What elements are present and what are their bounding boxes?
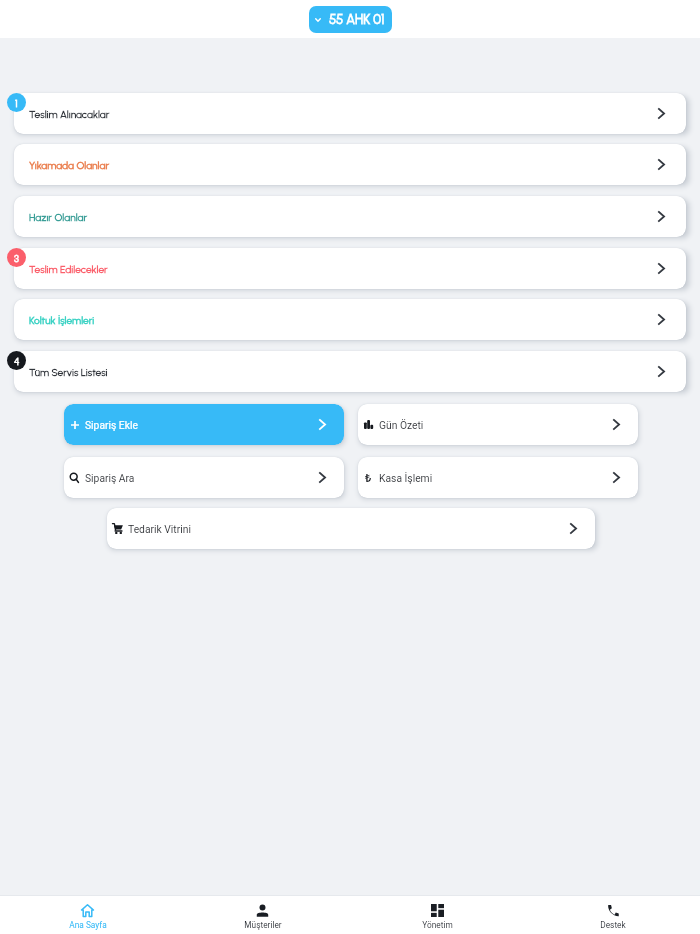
staticText: Destek: [600, 920, 626, 930]
staticText: 4: [14, 355, 20, 367]
button[interactable]: Sipariş Ara: [64, 457, 344, 498]
button[interactable]: Destek: [525, 896, 700, 934]
staticText: Teslim Alınacaklar: [29, 108, 110, 120]
button[interactable]: ₺: [358, 457, 638, 498]
staticText: Müşteriler: [244, 920, 282, 930]
button[interactable]: Hazır Olanlar: [14, 196, 686, 237]
staticText: Koltuk İşlemleri: [29, 314, 95, 326]
staticText: Yıkamada Olanlar: [29, 159, 110, 171]
button[interactable]: Teslim Alınacaklar: [14, 93, 686, 134]
button[interactable]: Koltuk İşlemleri: [14, 299, 686, 340]
staticText: Tedarik Vitrini: [128, 523, 191, 535]
button[interactable]: 55 AHK 01: [309, 6, 392, 33]
staticText: Yönetim: [422, 920, 453, 930]
staticText: Kasa İşlemi: [379, 472, 433, 484]
button[interactable]: Teslim Edilecekler: [14, 248, 686, 289]
button[interactable]: Ana Sayfa: [0, 896, 175, 934]
button[interactable]: Müşteriler: [175, 896, 350, 934]
staticText: ₺: [365, 470, 372, 485]
staticText: Gün Özeti: [379, 419, 424, 431]
staticText: Sipariş Ara: [85, 472, 135, 484]
button[interactable]: Yönetim: [350, 896, 525, 934]
button[interactable]: Gün Özeti: [358, 404, 638, 445]
staticText: Ana Sayfa: [69, 920, 107, 930]
button[interactable]: Sipariş Ekle: [64, 404, 344, 445]
button[interactable]: Tüm Servis Listesi: [14, 351, 686, 392]
staticText: 3: [14, 252, 19, 264]
staticText: Tüm Servis Listesi: [29, 366, 108, 378]
button[interactable]: Yıkamada Olanlar: [14, 144, 686, 185]
staticText: 55 AHK 01: [329, 12, 385, 28]
staticText: Sipariş Ekle: [85, 419, 138, 431]
staticText: Hazır Olanlar: [29, 211, 88, 223]
staticText: Teslim Edilecekler: [29, 263, 108, 275]
button[interactable]: Tedarik Vitrini: [107, 508, 595, 549]
staticText: 1: [15, 97, 18, 109]
